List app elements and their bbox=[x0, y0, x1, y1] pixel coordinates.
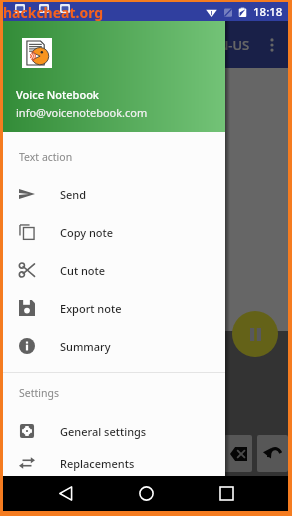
button[interactable]: Back bbox=[38, 476, 94, 511]
staticText: 18:18 bbox=[253, 4, 283, 20]
button[interactable]: Cut note bbox=[3, 251, 225, 289]
button[interactable] bbox=[224, 435, 252, 472]
button[interactable]: General settings bbox=[3, 412, 225, 450]
button[interactable] bbox=[257, 435, 288, 472]
button[interactable]: Recents bbox=[198, 476, 254, 511]
staticText: General settings bbox=[60, 424, 147, 439]
button[interactable]: Summary bbox=[3, 327, 225, 365]
button[interactable]: Replacements bbox=[3, 450, 225, 476]
button[interactable]: Pause bbox=[232, 311, 278, 357]
button[interactable]: Home bbox=[118, 476, 174, 511]
staticText: Text action bbox=[19, 150, 73, 164]
button[interactable]: Copy note bbox=[3, 213, 225, 251]
staticText: Cut note bbox=[60, 263, 106, 278]
staticText: Settings bbox=[19, 386, 59, 400]
staticText: Summary bbox=[60, 339, 111, 354]
button[interactable]: Send bbox=[3, 175, 225, 213]
staticText: Export note bbox=[60, 301, 122, 316]
button[interactable]: More options bbox=[259, 32, 285, 58]
staticText: Replacements bbox=[60, 456, 135, 471]
staticText: Send bbox=[60, 187, 87, 202]
button[interactable]: Export note bbox=[3, 289, 225, 327]
staticText: Copy note bbox=[60, 225, 114, 240]
staticText: hackcheat.org bbox=[3, 3, 104, 22]
staticText: Voice Notebook bbox=[16, 87, 100, 102]
staticText: info@voicenotebook.com bbox=[16, 105, 148, 120]
staticText: EN-US bbox=[211, 36, 250, 54]
